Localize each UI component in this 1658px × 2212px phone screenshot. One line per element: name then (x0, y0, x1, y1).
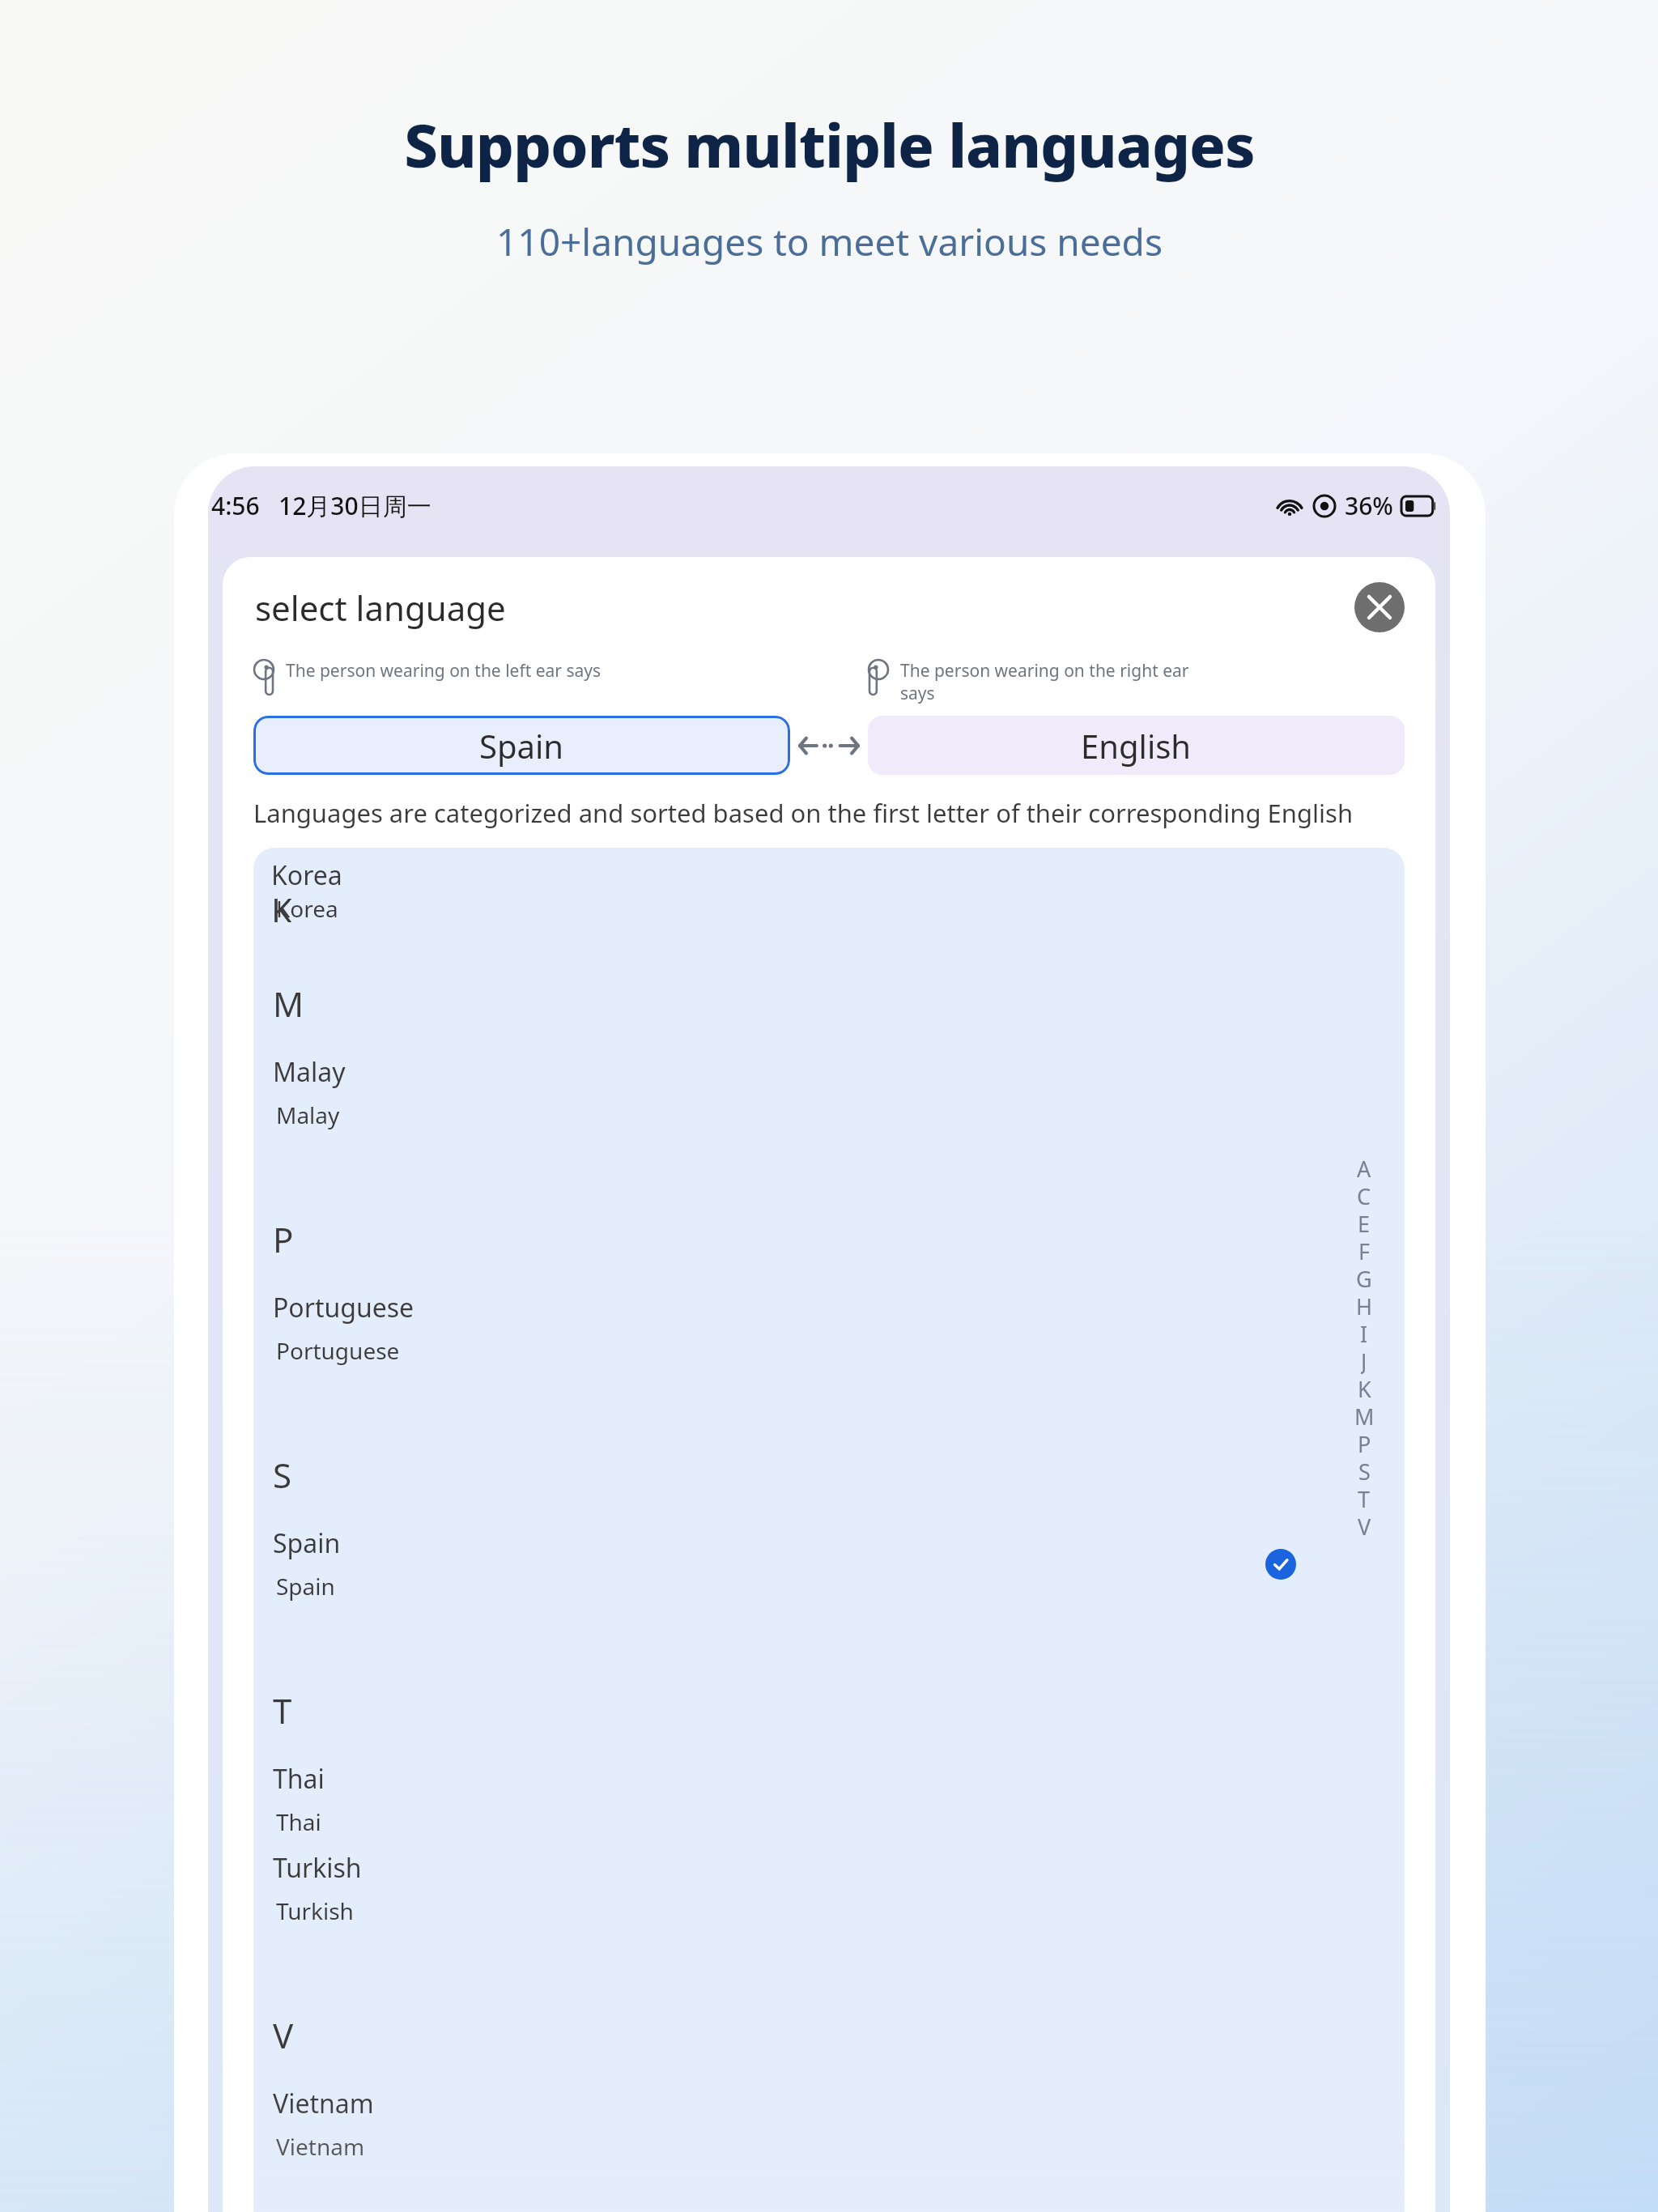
staticText: Vietnam (273, 2086, 374, 2121)
staticText: H (1356, 1291, 1373, 1319)
staticText: 36% (1345, 489, 1393, 522)
staticText: Languages are categorized and sorted bas… (253, 796, 1419, 830)
button[interactable]: E (1343, 1209, 1385, 1236)
staticText: Malay (276, 1100, 340, 1130)
button[interactable]: Korea (253, 856, 1405, 922)
button[interactable]: Close (1354, 582, 1405, 632)
staticText: M (1354, 1402, 1375, 1429)
staticText: K (1358, 1374, 1371, 1402)
other: Selected (1265, 1549, 1296, 1580)
staticText: J (1361, 1346, 1367, 1374)
staticText: I (1360, 1319, 1368, 1346)
button[interactable]: T (1343, 1484, 1385, 1512)
staticText: E (1358, 1209, 1371, 1236)
staticText: Malay (273, 1054, 346, 1090)
staticText: S (1358, 1457, 1371, 1484)
staticText: The person wearing on the right ear says (900, 659, 1189, 704)
button[interactable]: P (1343, 1429, 1385, 1457)
staticText: Korea (271, 857, 342, 893)
button[interactable]: G (1343, 1264, 1385, 1291)
staticText: M (273, 981, 304, 1027)
staticText: Turkish (273, 1850, 362, 1886)
button[interactable]: Turkish (253, 1850, 1405, 1928)
staticText: P (273, 1216, 294, 1262)
staticText: Vietnam (276, 2131, 365, 2162)
staticText: Portuguese (273, 1290, 414, 1325)
staticText: F (1358, 1236, 1371, 1264)
staticText: Thai (273, 1761, 325, 1797)
staticText: T (1358, 1484, 1371, 1512)
button[interactable]: I (1343, 1319, 1385, 1346)
button[interactable]: English (868, 716, 1405, 775)
staticText: 110+languages to meet various needs (496, 216, 1163, 267)
button[interactable]: Spain (253, 716, 790, 775)
button[interactable]: K (1343, 1374, 1385, 1402)
staticText: select language (255, 585, 506, 631)
staticText: Portuguese (276, 1335, 400, 1366)
staticText: Thai (276, 1806, 321, 1837)
staticText: V (273, 2012, 294, 2058)
staticText: C (1357, 1181, 1371, 1209)
button[interactable]: S (1343, 1457, 1385, 1484)
button[interactable]: M (1343, 1402, 1385, 1429)
button[interactable]: J (1343, 1346, 1385, 1374)
staticText: T (273, 1687, 292, 1733)
staticText: V (1358, 1512, 1371, 1539)
staticText: Supports multiple languages (404, 104, 1255, 185)
staticText: English (1081, 724, 1192, 768)
staticText: Spain (276, 1571, 335, 1602)
button[interactable]: H (1343, 1291, 1385, 1319)
staticText: S (273, 1452, 292, 1498)
button[interactable]: Vietnam (253, 2086, 1405, 2163)
button[interactable]: Malay (253, 1054, 1405, 1132)
button[interactable]: Thai (253, 1761, 1405, 1839)
staticText: K (271, 887, 292, 922)
staticText: Spain (479, 724, 564, 768)
button[interactable]: Swap languages (790, 716, 868, 775)
button[interactable]: V (1343, 1512, 1385, 1539)
staticText: G (1356, 1264, 1372, 1291)
button[interactable]: Portuguese (253, 1290, 1405, 1368)
staticText: 4:56 12月30日周一 (211, 489, 432, 522)
staticText: Spain (273, 1525, 341, 1561)
staticText: Turkish (276, 1895, 354, 1926)
button[interactable]: Spain (253, 1525, 1405, 1603)
button[interactable]: C (1343, 1181, 1385, 1209)
staticText: A (1357, 1154, 1371, 1181)
button[interactable]: A (1343, 1154, 1385, 1181)
staticText: P (1358, 1429, 1371, 1457)
button[interactable]: F (1343, 1236, 1385, 1264)
staticText: The person wearing on the left ear says (286, 659, 602, 683)
staticText: Korea (276, 893, 338, 922)
